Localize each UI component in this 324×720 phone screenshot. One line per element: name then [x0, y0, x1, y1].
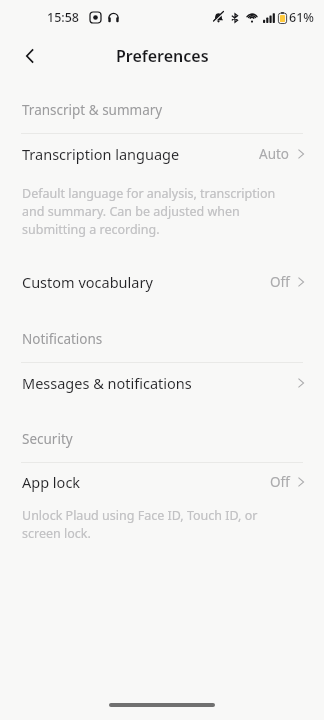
staticText: Default language for analysis, transcrip…	[22, 185, 298, 237]
staticText: Unlock Plaud using Face ID, Touch ID, or…	[22, 507, 298, 541]
staticText: Off	[270, 473, 290, 491]
staticText: Off	[270, 273, 290, 291]
staticText: 15:58	[47, 9, 80, 26]
staticText: Messages & notifications	[22, 373, 298, 393]
staticText: 61%	[289, 9, 314, 26]
button[interactable]: Transcription language	[0, 134, 324, 174]
staticText: Transcript & summary	[22, 101, 163, 119]
staticText: Security	[22, 430, 73, 448]
staticText: Auto	[259, 145, 290, 163]
staticText: Custom vocabulary	[22, 272, 270, 292]
button[interactable]: Messages & notifications	[0, 363, 324, 403]
button[interactable]: Custom vocabulary	[0, 264, 324, 300]
button[interactable]: Back	[10, 36, 50, 76]
staticText: App lock	[22, 472, 270, 492]
staticText: Preferences	[116, 45, 209, 67]
button[interactable]: App lock	[0, 463, 324, 501]
staticText: Notifications	[22, 330, 103, 348]
staticText: Transcription language	[22, 144, 259, 164]
